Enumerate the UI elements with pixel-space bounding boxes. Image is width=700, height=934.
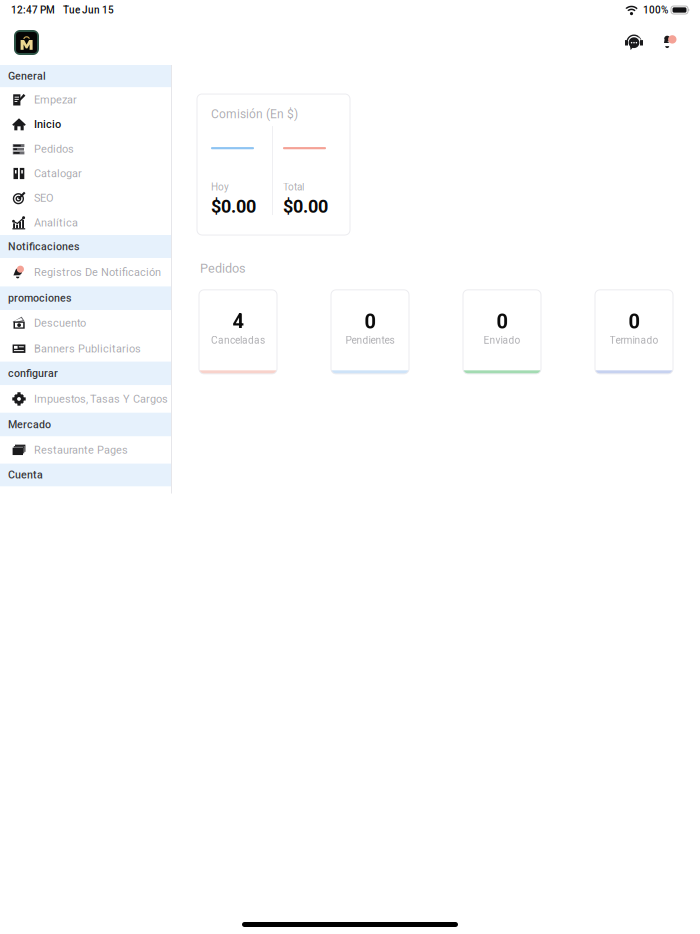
staticText: Banners Publicitarios bbox=[34, 342, 141, 355]
staticText: Cuenta bbox=[8, 469, 43, 481]
button[interactable]: 4 bbox=[199, 290, 277, 374]
staticText: 12:47 PM bbox=[11, 4, 55, 16]
button[interactable]: Inicio bbox=[0, 112, 171, 137]
staticText: configurar bbox=[8, 367, 58, 380]
button[interactable]: Descuento bbox=[0, 310, 171, 336]
button[interactable]: Registros De Notificación bbox=[0, 258, 171, 286]
button[interactable]: Banners Publicitarios bbox=[0, 336, 171, 362]
staticText: Restaurante Pages bbox=[34, 444, 128, 456]
button[interactable]: SEO bbox=[0, 186, 171, 210]
staticText: Pendientes bbox=[345, 334, 394, 346]
staticText: 4 bbox=[232, 310, 243, 333]
staticText: Mercado bbox=[8, 418, 51, 431]
button[interactable]: Catalogar bbox=[0, 161, 171, 186]
staticText: Descuento bbox=[34, 316, 86, 329]
button[interactable]: Restaurante Pages bbox=[0, 436, 171, 464]
staticText: Total bbox=[283, 181, 304, 193]
staticText: SEO bbox=[34, 192, 54, 204]
staticText: Canceladas bbox=[211, 334, 265, 346]
staticText: Hoy bbox=[211, 181, 229, 193]
staticText: Comisión (En $) bbox=[211, 107, 298, 121]
button[interactable]: 0 bbox=[331, 290, 409, 374]
staticText: Terminado bbox=[609, 334, 658, 346]
staticText: Pedidos bbox=[200, 261, 246, 276]
staticText: Impuestos, Tasas Y Cargos bbox=[34, 392, 168, 405]
button[interactable]: Support chat bbox=[624, 32, 644, 52]
staticText: Catalogar bbox=[34, 167, 82, 180]
staticText: 100% bbox=[643, 4, 668, 16]
staticText: 0 bbox=[496, 310, 507, 333]
button[interactable]: Empezar bbox=[0, 87, 171, 112]
staticText: 0 bbox=[364, 310, 375, 333]
staticText: Analítica bbox=[34, 216, 78, 229]
button[interactable]: Analítica bbox=[0, 210, 171, 235]
button[interactable]: 0 bbox=[595, 290, 673, 374]
staticText: Pedidos bbox=[34, 142, 74, 155]
button[interactable]: Merchant dashboard home bbox=[14, 30, 39, 55]
staticText: General bbox=[8, 70, 46, 82]
staticText: $0.00 bbox=[211, 196, 256, 217]
staticText: Empezar bbox=[34, 93, 77, 106]
button[interactable]: Pedidos bbox=[0, 137, 171, 161]
staticText: Registros De Notificación bbox=[34, 266, 161, 279]
button[interactable]: 0 bbox=[463, 290, 541, 374]
staticText: Notificaciones bbox=[8, 240, 79, 253]
staticText: 0 bbox=[628, 310, 639, 333]
button[interactable]: Notifications bbox=[660, 32, 680, 52]
staticText: $0.00 bbox=[283, 196, 328, 217]
staticText: Inicio bbox=[34, 118, 61, 131]
staticText: Tue Jun 15 bbox=[63, 4, 114, 16]
staticText: promociones bbox=[8, 292, 71, 304]
button[interactable]: Impuestos, Tasas Y Cargos bbox=[0, 385, 171, 413]
staticText: Enviado bbox=[483, 334, 520, 346]
